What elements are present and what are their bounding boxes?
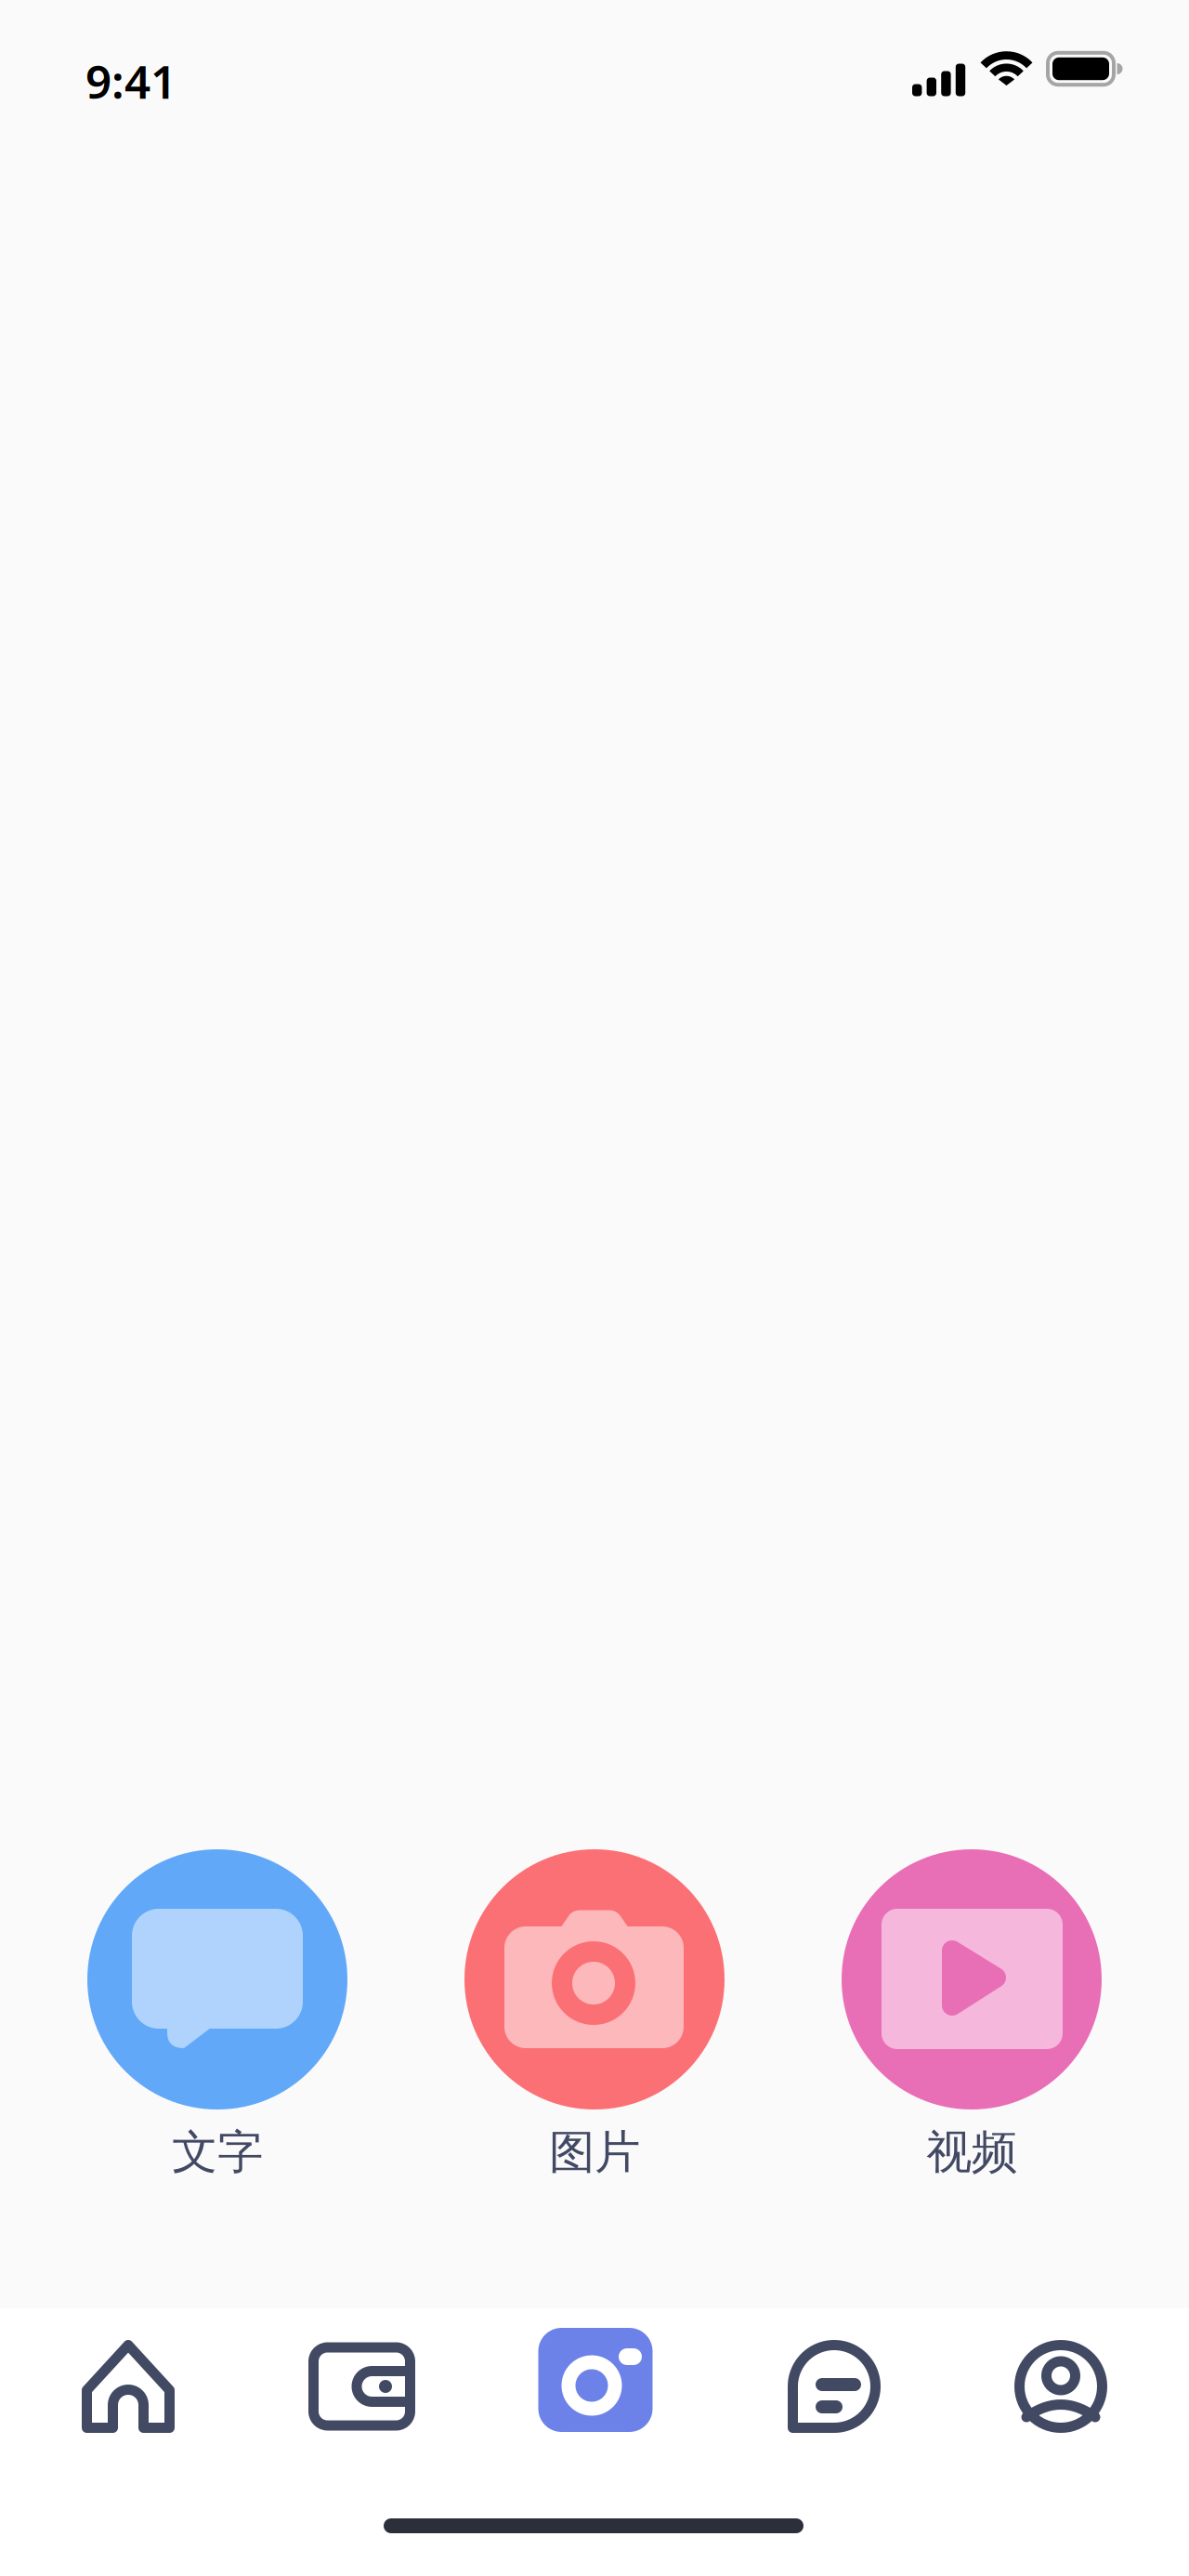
button[interactable]: 文字 — [87, 1849, 347, 2186]
staticText: 文字 — [172, 2124, 263, 2180]
button[interactable]: Home — [67, 2325, 189, 2448]
button[interactable]: Messages — [773, 2325, 895, 2448]
staticText: 9:41 — [85, 50, 176, 111]
button[interactable]: Camera — [534, 2319, 657, 2441]
staticText: 图片 — [549, 2124, 640, 2180]
button[interactable]: 视频 — [842, 1849, 1102, 2186]
button[interactable]: Wallet — [303, 2325, 425, 2448]
button[interactable]: Profile — [1000, 2325, 1122, 2448]
button[interactable]: 图片 — [464, 1849, 725, 2186]
staticText: 视频 — [926, 2124, 1017, 2180]
